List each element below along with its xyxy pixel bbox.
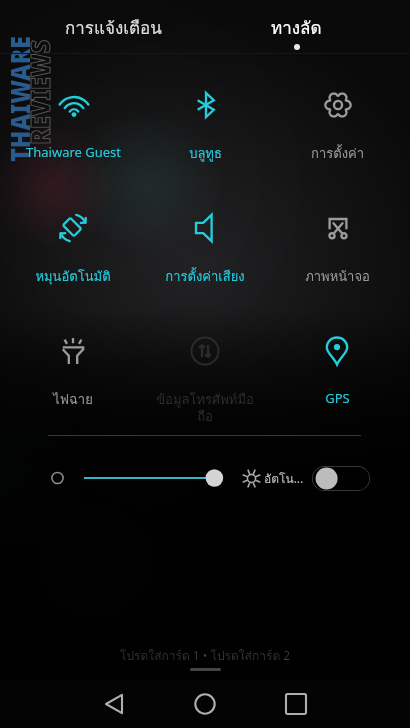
staticText: GPS	[325, 389, 350, 407]
staticText: ไฟฉาย	[53, 389, 93, 410]
staticText: REVIEWS	[22, 39, 52, 145]
button[interactable]: GPS	[271, 306, 403, 418]
staticText: โปรดใส่การ์ด 1 • โปรดใส่การ์ด 2	[120, 646, 291, 665]
staticText: การตั้งค่าเสียง	[165, 266, 245, 287]
staticText: การตั้งค่า	[311, 143, 364, 164]
staticText: ภาพหน้าจอ	[305, 266, 370, 287]
button[interactable]: การแจ้งเตือน	[33, 0, 193, 54]
button[interactable]: ทางลัด	[216, 0, 376, 54]
button[interactable]: Recents	[262, 680, 330, 728]
button[interactable]: บลูทูธ	[139, 60, 271, 172]
staticText: หมุนอัตโนมัติ	[35, 266, 111, 287]
staticText: ข้อมูลโทรศัพท์มือ ถือ	[156, 389, 254, 427]
button[interactable]: ภาพหน้าจอ	[271, 183, 403, 295]
button[interactable]: Back	[80, 680, 148, 728]
button[interactable]: Auto brightness	[312, 466, 370, 491]
button[interactable]: การตั้งค่าเสียง	[139, 183, 271, 295]
staticText: อัตโน...	[264, 469, 304, 488]
button[interactable]: Home	[171, 680, 239, 728]
staticText: Thaiware Guest	[26, 143, 121, 161]
staticText: บลูทูธ	[189, 143, 222, 164]
staticText: THAIWARE	[2, 35, 33, 162]
button[interactable]: หมุนอัตโนมัติ	[7, 183, 139, 295]
staticText: การแจ้งเตือน	[65, 14, 162, 41]
button[interactable]: ข้อมูลโทรศัพท์มือ ถือ	[139, 306, 271, 418]
button[interactable]: Brightness	[40, 458, 240, 498]
button[interactable]: การตั้งค่า	[271, 60, 403, 172]
button[interactable]: ไฟฉาย	[7, 306, 139, 418]
button[interactable]: Thaiware Guest	[7, 60, 139, 172]
staticText: ทางลัด	[271, 14, 322, 41]
